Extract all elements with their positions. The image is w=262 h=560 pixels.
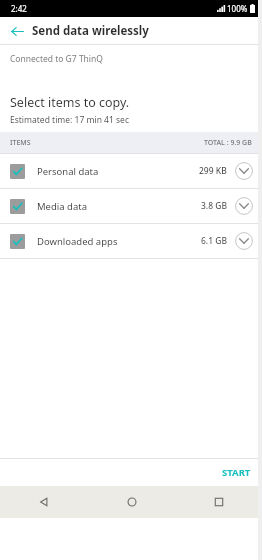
button[interactable]: Media data (0, 189, 262, 223)
button[interactable]: Home (88, 486, 175, 518)
staticText: 299 KB (199, 165, 227, 177)
staticText: START (222, 466, 251, 479)
button[interactable]: Personal data (0, 154, 262, 188)
staticText: 100% (227, 3, 248, 14)
button[interactable]: Back (7, 21, 27, 41)
button[interactable]: Downloaded apps (0, 224, 262, 258)
staticText: Media data (37, 200, 87, 213)
staticText: Select items to copy. (10, 94, 130, 111)
button[interactable]: Expand Personal data (235, 162, 253, 180)
staticText: Personal data (37, 165, 99, 178)
staticText: 6.1 GB (201, 235, 227, 247)
staticText: TOTAL : 9.9 GB (204, 138, 252, 148)
button[interactable]: Expand Media data (235, 197, 253, 215)
button[interactable]: START (211, 460, 262, 485)
staticText: 2:42 (11, 3, 27, 14)
staticText: Estimated time: 17 min 41 sec (10, 114, 129, 126)
staticText: Connected to G7 ThinQ (10, 53, 103, 65)
staticText: ITEMS (10, 138, 31, 148)
button[interactable]: Back (0, 486, 88, 518)
staticText: Downloaded apps (37, 235, 118, 248)
button[interactable]: Expand Downloaded apps (235, 232, 253, 250)
staticText: 3.8 GB (201, 200, 227, 212)
staticText: Send data wirelessly (32, 23, 149, 39)
button[interactable]: Recents (175, 486, 262, 518)
